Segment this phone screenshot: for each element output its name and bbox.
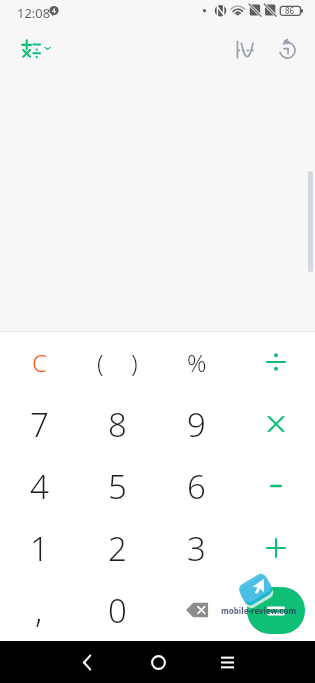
button[interactable]: Calculator mode (16, 32, 58, 66)
staticText: 8 (108, 402, 127, 447)
staticText: % (187, 346, 207, 379)
staticText: 4 (30, 464, 49, 509)
button[interactable] (236, 393, 315, 455)
button[interactable] (236, 579, 315, 641)
staticText: mobile-review.com (221, 605, 297, 616)
staticText: 9 (187, 402, 206, 447)
button[interactable]: History (270, 32, 304, 66)
staticText: 0 (108, 588, 127, 633)
button[interactable]: 9 (157, 393, 236, 455)
button[interactable]: ( (78, 331, 157, 393)
button[interactable] (236, 331, 315, 393)
button[interactable]: Home (138, 642, 178, 682)
button[interactable]: Graph (228, 32, 262, 66)
staticText: 1 (30, 526, 49, 571)
staticText: 2 (108, 526, 127, 571)
button[interactable]: 8 (78, 393, 157, 455)
staticText: 5 (108, 464, 127, 509)
button[interactable]: 4 (0, 455, 78, 517)
staticText: 86 (285, 5, 295, 16)
staticText: , (35, 588, 43, 633)
button[interactable]: Back (67, 642, 107, 682)
staticText: 6 (187, 464, 206, 509)
button[interactable]: , (0, 579, 78, 641)
button[interactable] (157, 579, 236, 641)
button[interactable]: 5 (78, 455, 157, 517)
button[interactable]: 0 (78, 579, 157, 641)
button[interactable] (236, 517, 315, 579)
button[interactable]: 3 (157, 517, 236, 579)
staticText: ) (131, 346, 138, 379)
button[interactable]: 7 (0, 393, 78, 455)
button[interactable]: C (0, 331, 78, 393)
staticText: C (32, 346, 47, 379)
staticText: 7 (30, 402, 49, 447)
button[interactable]: 1 (0, 517, 78, 579)
button[interactable]: Recents (207, 642, 247, 682)
button[interactable]: 2 (78, 517, 157, 579)
button[interactable]: % (157, 331, 236, 393)
button[interactable] (236, 455, 315, 517)
button[interactable]: 6 (157, 455, 236, 517)
staticText: 12:08 (17, 4, 51, 22)
staticText: ( (97, 346, 104, 379)
staticText: 3 (187, 526, 206, 571)
